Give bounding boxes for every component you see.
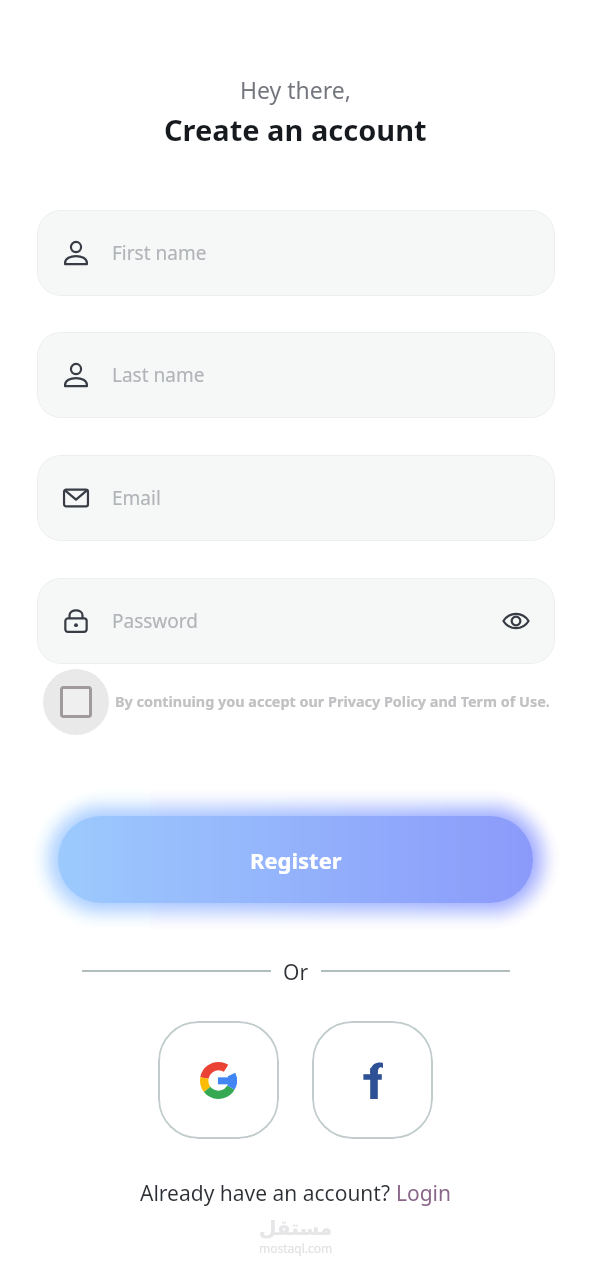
staticText: Last name	[112, 362, 205, 388]
button[interactable]: Sign in with Facebook	[312, 1021, 433, 1139]
staticText: Email	[112, 485, 161, 511]
staticText: mostaql.com	[259, 1240, 333, 1256]
staticText: Or	[283, 958, 309, 984]
button[interactable]: Register	[58, 816, 533, 903]
button[interactable]: Last name	[37, 332, 555, 418]
button[interactable]: Email	[37, 455, 555, 541]
button[interactable]: First name	[37, 210, 555, 296]
button[interactable]: Show password	[502, 607, 530, 635]
staticText: Password	[112, 608, 198, 634]
staticText: Register	[250, 845, 342, 875]
staticText: مستقل	[259, 1216, 333, 1239]
button[interactable]: Password	[37, 578, 555, 664]
staticText: First name	[112, 240, 207, 266]
staticText: By continuing you accept our Privacy Pol…	[115, 692, 550, 712]
button[interactable]: Sign in with Google	[158, 1021, 279, 1139]
button[interactable]: Login	[396, 1179, 452, 1208]
staticText: Hey there,	[240, 74, 351, 105]
button[interactable]: By continuing you accept our Privacy Pol…	[43, 669, 558, 735]
staticText: Login	[396, 1179, 452, 1208]
staticText: Create an account	[164, 110, 427, 149]
staticText: Already have an account?	[140, 1179, 396, 1208]
